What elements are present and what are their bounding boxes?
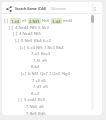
staticText: d5 bbox=[42, 58, 47, 64]
staticText: d6 bbox=[39, 104, 44, 110]
staticText: Bb4 bbox=[56, 45, 64, 51]
staticText: [-] bbox=[15, 38, 20, 44]
staticText: 7.Nc3 bbox=[44, 45, 55, 51]
staticText: 6.c4 bbox=[27, 45, 35, 51]
staticText: Scotch Game (C44) bbox=[15, 6, 47, 11]
button[interactable]: 7.a3 bbox=[31, 51, 52, 57]
staticText: Bxc3 bbox=[41, 51, 51, 57]
button[interactable]: More options bbox=[90, 4, 99, 13]
staticText: [-] bbox=[4, 18, 9, 24]
staticText: 7.Qe2 bbox=[49, 71, 61, 77]
staticText: 7.a3 bbox=[31, 51, 40, 57]
staticText: d5 bbox=[41, 78, 46, 84]
staticText: exd4 bbox=[63, 18, 73, 24]
staticText: [-] bbox=[9, 25, 14, 31]
button[interactable]: 7.Bd5 bbox=[26, 111, 47, 115]
staticText: Qe7 bbox=[40, 71, 48, 77]
button[interactable]: 8.c4 bbox=[31, 91, 40, 97]
staticText: Ng4 bbox=[62, 71, 70, 77]
staticText: 8.b4 bbox=[31, 64, 40, 70]
staticText: · 54 moves bbox=[49, 6, 66, 11]
button[interactable]: [+] bbox=[20, 45, 65, 51]
staticText: Nc6 bbox=[42, 18, 50, 24]
button[interactable]: [-] bbox=[4, 18, 74, 24]
button[interactable]: [-] bbox=[13, 31, 42, 37]
staticText: 5.exd4 bbox=[24, 97, 37, 103]
staticText: Nf6 bbox=[30, 25, 37, 31]
staticText: 7.Nb5 bbox=[26, 104, 38, 110]
staticText: Bd6 bbox=[38, 111, 46, 115]
staticText: 8.c4 bbox=[31, 91, 39, 97]
staticText: Nf6 bbox=[36, 45, 43, 51]
staticText: 6.c3 bbox=[43, 38, 51, 44]
staticText: 7.Bd5 bbox=[26, 111, 37, 115]
button[interactable]: Share bbox=[4, 4, 13, 13]
staticText: 2.Nf3 bbox=[29, 19, 40, 23]
button[interactable]: [-] bbox=[18, 97, 46, 103]
staticText: Bc5 bbox=[38, 97, 45, 103]
button[interactable]: 7.d3 bbox=[33, 84, 49, 90]
button[interactable]: 7.f3 bbox=[33, 58, 48, 64]
button[interactable]: [+] bbox=[21, 71, 71, 77]
staticText: [+] bbox=[20, 45, 26, 51]
staticText: 1.e4 bbox=[11, 19, 20, 23]
staticText: [+] bbox=[21, 71, 27, 77]
button[interactable]: 8.b4 bbox=[31, 64, 41, 70]
staticText: Nf6 bbox=[34, 31, 41, 37]
staticText: 7.d3 bbox=[33, 84, 42, 90]
staticText: 6.Nf3 bbox=[28, 71, 39, 77]
staticText: d5 bbox=[43, 84, 48, 90]
staticText: e5 bbox=[22, 18, 27, 24]
staticText: 3.d4 bbox=[52, 19, 61, 23]
staticText: 4.Nxd4 bbox=[19, 31, 33, 37]
button[interactable]: 7.Nb5 bbox=[26, 104, 45, 110]
staticText: 5.Nc3 bbox=[38, 25, 49, 31]
staticText: Bb4 bbox=[34, 38, 42, 44]
staticText: [-] bbox=[13, 31, 18, 37]
button[interactable]: 7.c3 bbox=[32, 78, 47, 84]
button[interactable]: [-] bbox=[9, 25, 50, 31]
staticText: 5.Nb5 bbox=[21, 38, 33, 44]
staticText: 7.f3 bbox=[33, 58, 41, 64]
button[interactable]: [-] bbox=[15, 38, 52, 44]
staticText: [-] bbox=[18, 97, 23, 103]
staticText: 7.c3 bbox=[32, 78, 40, 84]
staticText: 4.Nxd4 bbox=[15, 25, 29, 31]
